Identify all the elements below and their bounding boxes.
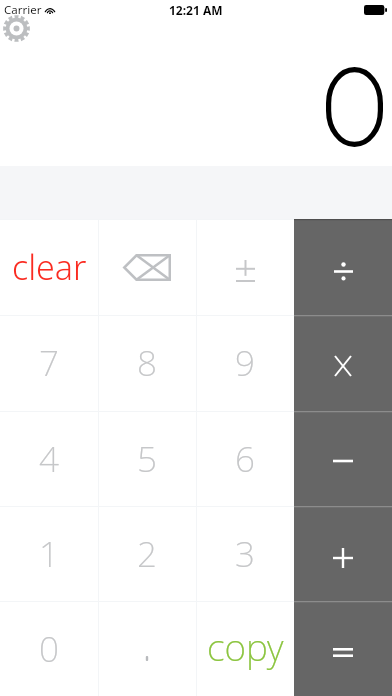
button[interactable] xyxy=(294,315,392,411)
button[interactable]: 1 xyxy=(0,506,98,601)
staticText: 7 xyxy=(39,339,59,387)
staticText: 12:21 AM xyxy=(169,2,223,18)
staticText: 3 xyxy=(235,530,255,578)
staticText: 4 xyxy=(39,435,59,483)
button[interactable]: 9 xyxy=(196,315,294,411)
button[interactable]: copy xyxy=(196,601,294,696)
button[interactable]: 2 xyxy=(98,506,196,601)
button[interactable]: 3 xyxy=(196,506,294,601)
staticText: 9 xyxy=(235,339,255,387)
staticText: clear xyxy=(12,244,87,290)
button[interactable]: clear xyxy=(0,219,98,315)
button[interactable]: 0 xyxy=(0,601,98,696)
staticText: copy xyxy=(207,621,284,671)
staticText: 6 xyxy=(235,435,255,483)
button[interactable] xyxy=(196,219,294,315)
staticText: 2 xyxy=(137,530,157,578)
button[interactable]: 7 xyxy=(0,315,98,411)
button[interactable]: 4 xyxy=(0,411,98,506)
staticText: 8 xyxy=(137,339,157,387)
button[interactable]: 6 xyxy=(196,411,294,506)
staticText: Carrier xyxy=(4,2,42,18)
staticText: 1 xyxy=(39,530,59,578)
button[interactable]: 5 xyxy=(98,411,196,506)
staticText: 5 xyxy=(137,435,157,483)
button[interactable] xyxy=(294,219,392,315)
button[interactable]: 8 xyxy=(98,315,196,411)
button[interactable]: Settings xyxy=(3,15,30,42)
button[interactable] xyxy=(294,506,392,601)
staticText: 0 xyxy=(39,625,59,673)
button[interactable] xyxy=(294,601,392,696)
button[interactable] xyxy=(98,219,196,315)
button[interactable] xyxy=(294,411,392,506)
